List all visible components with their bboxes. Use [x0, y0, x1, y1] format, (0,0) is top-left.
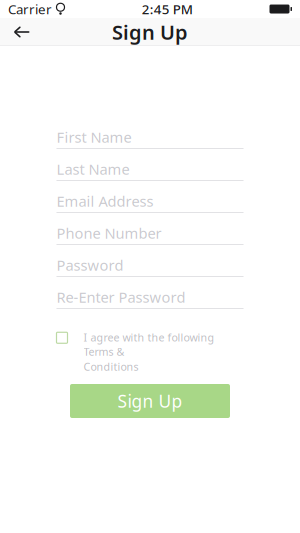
staticText: Phone Number: [56, 223, 161, 243]
staticText: First Name: [56, 127, 131, 147]
staticText: Password: [56, 255, 123, 275]
staticText: Email Address: [56, 191, 153, 211]
button[interactable]: Sign Up: [70, 384, 230, 418]
staticText: Re-Enter Password: [56, 287, 185, 307]
button[interactable]: Back: [0, 18, 44, 46]
button[interactable]: I agree with the following Terms &: [56, 340, 243, 364]
staticText: Conditions: [83, 360, 138, 374]
staticText: I agree with the following Terms &: [83, 330, 214, 359]
staticText: Sign Up: [117, 389, 182, 412]
staticText: Last Name: [56, 159, 129, 179]
staticText: Carrier: [8, 0, 52, 18]
staticText: Sign Up: [112, 19, 188, 45]
staticText: 2:45 PM: [142, 0, 193, 18]
